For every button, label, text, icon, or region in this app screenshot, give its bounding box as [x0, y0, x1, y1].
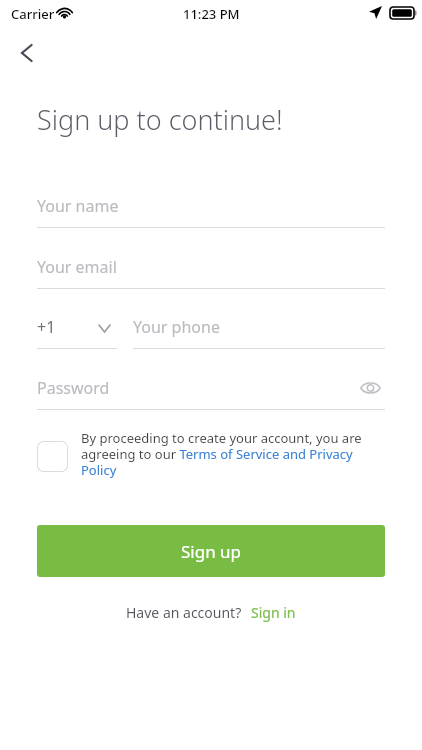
button[interactable]: Back — [8, 33, 48, 73]
button[interactable]: Country code — [37, 311, 117, 349]
staticText: Your name — [37, 195, 119, 217]
staticText: Sign in — [251, 603, 296, 622]
staticText: 11:23 PM — [183, 5, 240, 23]
button[interactable]: Your name — [37, 190, 385, 228]
button[interactable]: Password — [37, 372, 385, 410]
staticText: Your email — [37, 256, 117, 278]
staticText: +1 — [37, 316, 56, 338]
button[interactable]: Sign up — [37, 525, 385, 577]
staticText: By proceeding to create your account, yo… — [81, 429, 385, 478]
staticText: Your phone — [133, 316, 220, 338]
button[interactable]: Show password — [355, 373, 385, 403]
staticText: Sign up to continue! — [37, 101, 283, 138]
staticText: Have an account? — [126, 603, 242, 622]
button[interactable]: Your phone — [133, 311, 385, 349]
button[interactable]: Accept terms — [37, 429, 385, 478]
staticText: Sign up — [181, 540, 242, 563]
button[interactable]: Sign in — [251, 603, 296, 622]
staticText: Carrier — [11, 5, 55, 23]
other: Accept terms — [37, 441, 68, 472]
staticText: Password — [37, 377, 110, 399]
button[interactable]: Your email — [37, 251, 385, 289]
